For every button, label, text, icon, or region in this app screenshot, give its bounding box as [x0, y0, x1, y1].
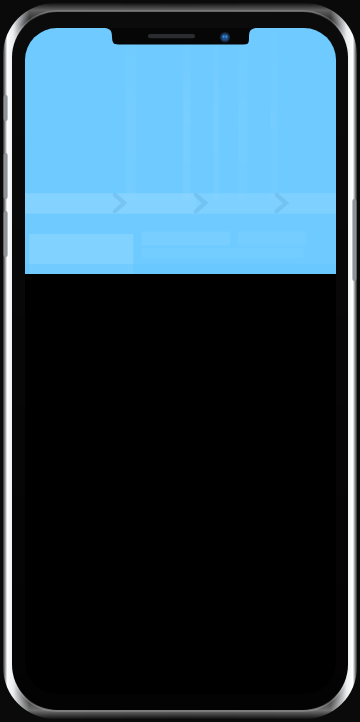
button[interactable]: Category [102, 193, 180, 214]
button[interactable]: Product image [25, 234, 129, 274]
button[interactable] [129, 234, 336, 274]
button[interactable]: Product [258, 193, 336, 214]
button[interactable]: Subcategory [180, 193, 258, 214]
